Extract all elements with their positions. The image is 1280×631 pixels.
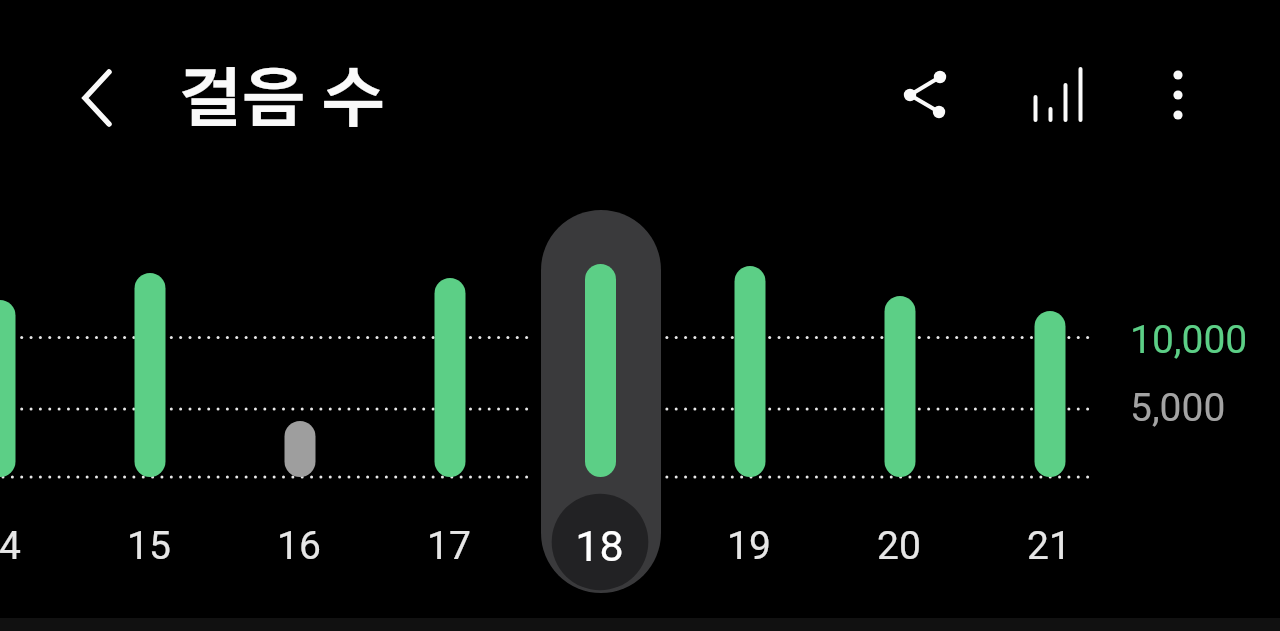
button[interactable]: 20 xyxy=(839,523,959,567)
staticText: 5,000 xyxy=(1130,385,1226,431)
button[interactable] xyxy=(541,210,661,593)
staticText: 18 xyxy=(575,521,624,571)
button[interactable] xyxy=(57,56,137,141)
button[interactable] xyxy=(1138,52,1218,137)
button[interactable] xyxy=(1013,51,1103,136)
staticText: 15 xyxy=(127,523,171,567)
button[interactable]: 16 xyxy=(239,523,359,567)
staticText: 20 xyxy=(877,523,921,567)
staticText: 21 xyxy=(1027,523,1071,567)
button[interactable]: 18 xyxy=(539,520,659,572)
button[interactable]: 17 xyxy=(389,523,509,567)
staticText: 16 xyxy=(277,523,321,567)
button[interactable]: 15 xyxy=(89,523,209,567)
staticText: 19 xyxy=(727,523,771,567)
staticText: 14 xyxy=(0,523,21,567)
button[interactable]: 14 xyxy=(0,523,59,567)
staticText: 17 xyxy=(427,523,471,567)
staticText: 10,000 xyxy=(1130,317,1248,363)
button[interactable] xyxy=(879,51,969,136)
staticText: 걸음 수 xyxy=(178,70,385,134)
button[interactable]: 21 xyxy=(989,523,1109,567)
button[interactable]: 19 xyxy=(689,523,809,567)
